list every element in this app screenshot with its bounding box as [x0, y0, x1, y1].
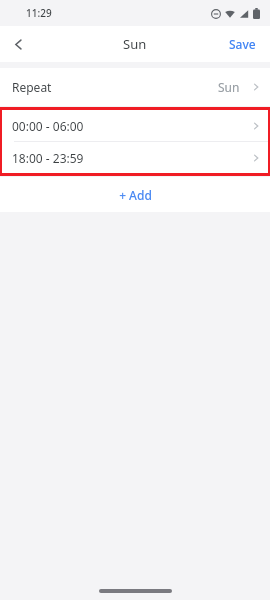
staticText: 18:00 - 23:59: [12, 150, 84, 166]
staticText: Save: [229, 36, 256, 52]
staticText: + Add: [119, 187, 152, 203]
button[interactable]: Save: [215, 28, 270, 60]
staticText: Repeat: [12, 79, 52, 95]
button[interactable]: Repeat: [0, 68, 270, 106]
staticText: 00:00 - 06:00: [12, 118, 84, 134]
button[interactable]: + Add: [0, 177, 270, 212]
button[interactable]: 18:00 - 23:59: [2, 142, 268, 173]
button[interactable]: 00:00 - 06:00: [2, 110, 268, 141]
staticText: 11:29: [26, 6, 52, 20]
staticText: Sun: [218, 79, 240, 95]
button[interactable]: Back: [0, 26, 36, 62]
staticText: Sun: [123, 35, 147, 53]
